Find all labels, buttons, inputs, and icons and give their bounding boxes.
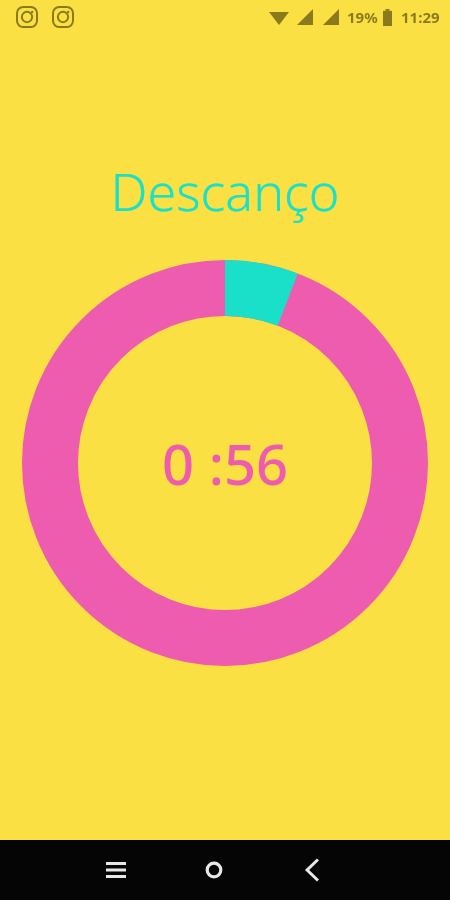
button[interactable]: Back — [282, 840, 342, 900]
staticText: 0 :56 — [162, 425, 288, 501]
staticText: Descanço — [110, 155, 340, 226]
button[interactable]: Recent apps — [86, 840, 146, 900]
staticText: 19% — [347, 7, 378, 27]
button[interactable]: Home — [184, 840, 244, 900]
staticText: 11:29 — [401, 7, 440, 27]
